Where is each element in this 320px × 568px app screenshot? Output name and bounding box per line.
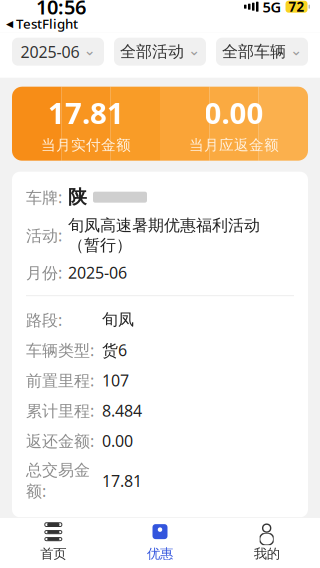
staticText: 17.81 — [102, 470, 142, 491]
staticText: 全部车辆 — [222, 42, 286, 62]
staticText: 8.484 — [102, 400, 142, 421]
staticText: 总交易金额: — [26, 460, 90, 501]
staticText: 路段: — [26, 309, 62, 330]
staticText: 10:56 — [36, 0, 86, 20]
staticText: 当月应返金额 — [189, 136, 279, 154]
button[interactable]: 全部车辆 — [216, 38, 308, 66]
staticText: 0.00 — [102, 430, 133, 451]
staticText: 优惠 — [147, 546, 173, 562]
staticText: 货6 — [102, 339, 127, 361]
staticText: ⌄ — [83, 42, 95, 58]
staticText: 返还金额: — [26, 430, 94, 451]
staticText: 首页 — [40, 546, 66, 562]
staticText: 前置里程: — [26, 370, 94, 391]
staticText: 陕 — [68, 186, 87, 209]
staticText: 活动: — [26, 225, 62, 246]
button[interactable]: 全部活动 — [114, 38, 206, 66]
staticText: ◀ — [6, 18, 13, 29]
staticText: 0.00 — [204, 93, 263, 132]
staticText: ⌄ — [188, 42, 200, 58]
staticText: 累计里程: — [26, 400, 94, 421]
button[interactable]: 我的 — [213, 518, 320, 566]
staticText: 5G — [262, 0, 281, 16]
button[interactable]: 首页 — [0, 518, 107, 566]
staticText: TestFlight — [16, 15, 78, 32]
staticText: 72 — [288, 0, 304, 15]
staticText: 车牌: — [26, 186, 62, 208]
staticText: 车辆类型: — [26, 339, 94, 361]
staticText: 2025-06 — [20, 41, 79, 62]
staticText: ⌄ — [290, 42, 302, 58]
staticText: 旬凤高速暑期优惠福利活动（暂行） — [68, 216, 260, 255]
staticText: 月份: — [26, 262, 62, 283]
staticText: 17.81 — [48, 93, 124, 132]
staticText: 全部活动 — [120, 42, 184, 62]
staticText: 107 — [102, 370, 129, 391]
staticText: 2025-06 — [68, 262, 127, 283]
staticText: 我的 — [254, 546, 280, 562]
staticText: 当月实付金额 — [41, 136, 131, 154]
button[interactable]: 优惠 — [107, 518, 213, 566]
button[interactable]: 2025-06 — [12, 38, 104, 66]
staticText: 旬凤 — [102, 310, 134, 330]
